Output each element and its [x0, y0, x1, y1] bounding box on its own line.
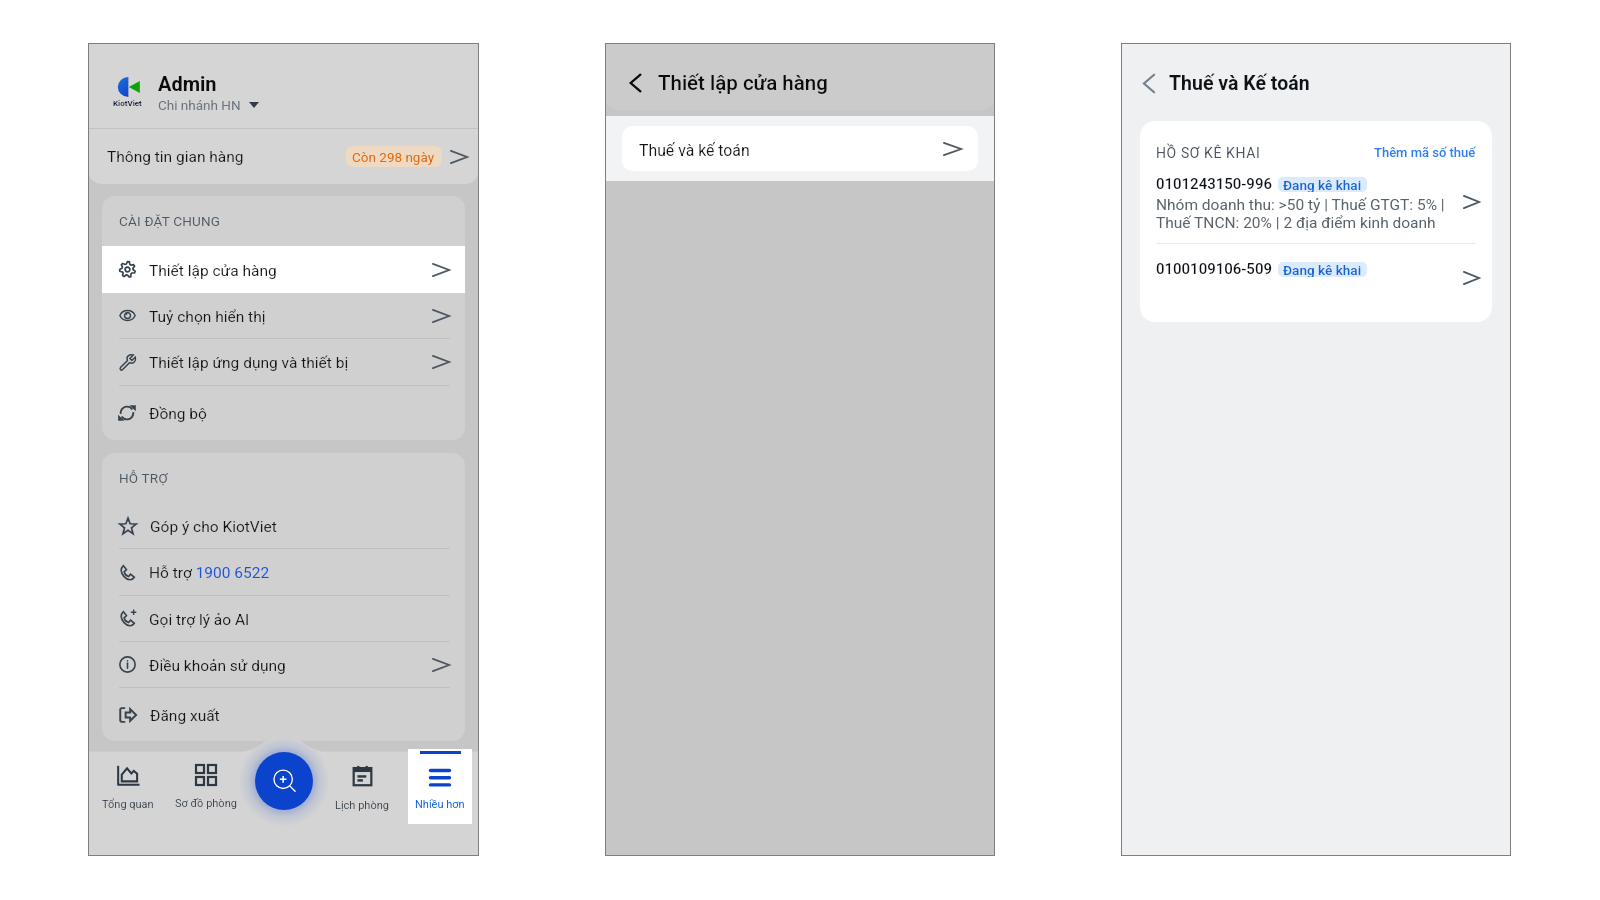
button[interactable]: Điều khoản sử dụng: [102, 642, 465, 688]
staticText: Thêm mã số thuế: [1374, 145, 1476, 160]
staticText: Thiết lập cửa hàng: [658, 71, 828, 95]
staticText: KiotViet: [113, 99, 142, 108]
staticText: HỖ TRỢ: [119, 470, 168, 486]
staticText: 0100109106-509: [1156, 260, 1272, 278]
staticText: Đồng bộ: [149, 405, 207, 423]
button[interactable]: 0101243150-996: [1140, 173, 1492, 243]
staticText: Tuỷ chọn hiển thị: [149, 308, 266, 326]
button[interactable]: 0100109106-509: [1140, 244, 1492, 322]
staticText: Thông tin gian hàng: [107, 148, 244, 166]
staticText: Tổng quan: [102, 798, 154, 811]
staticText: Nhóm doanh thu: >50 tỷ | Thuế GTGT: 5% |…: [1156, 196, 1445, 232]
button[interactable]: Gọi trợ lý ảo AI: [102, 596, 465, 642]
button[interactable]: Lịch phòng: [323, 749, 401, 856]
button[interactable]: Thêm mã số thuế: [1374, 145, 1476, 160]
button[interactable]: Góp ý cho KiotViet: [102, 503, 465, 549]
staticText: Đang kê khai: [1283, 177, 1362, 192]
button[interactable]: Đồng bộ: [102, 386, 465, 440]
staticText: HỒ SƠ KÊ KHAI: [1156, 145, 1261, 161]
staticText: Admin: [158, 72, 217, 95]
button[interactable]: Thiết lập ứng dụng và thiết bị: [102, 339, 465, 386]
button[interactable]: Nhiều hơn: [408, 749, 472, 824]
button[interactable]: Tuỷ chọn hiển thị: [102, 293, 465, 339]
staticText: Còn 298 ngày: [352, 149, 435, 165]
button[interactable]: Tìm kiếm: [255, 752, 313, 810]
staticText: Thuế và Kế toán: [1169, 72, 1310, 95]
button[interactable]: Quay lại: [622, 69, 650, 97]
staticText: Gọi trợ lý ảo AI: [149, 611, 250, 629]
staticText: Nhiều hơn: [415, 798, 465, 811]
button[interactable]: Đăng xuất: [102, 688, 465, 741]
staticText: Góp ý cho KiotViet: [150, 518, 277, 536]
staticText: Điều khoản sử dụng: [149, 657, 286, 675]
staticText: Chi nhánh HN: [158, 97, 241, 113]
button[interactable]: Sơ đồ phòng: [167, 749, 245, 856]
staticText: Thuế và kế toán: [639, 141, 750, 160]
button[interactable]: Thông tin gian hàng: [88, 129, 479, 184]
button[interactable]: Hỗ trợ 1900 6522: [102, 549, 465, 596]
staticText: CÀI ĐẶT CHUNG: [119, 213, 221, 229]
staticText: Đang kê khai: [1283, 262, 1362, 277]
staticText: Thiết lập cửa hàng: [149, 262, 277, 280]
staticText: 0101243150-996: [1156, 175, 1272, 193]
button[interactable]: Thiết lập cửa hàng: [102, 246, 465, 293]
button[interactable]: Quay lại: [1135, 69, 1163, 97]
staticText: Lịch phòng: [335, 799, 389, 812]
staticText: Đăng xuất: [150, 707, 220, 725]
staticText: Thiết lập ứng dụng và thiết bị: [149, 354, 349, 372]
staticText: Hỗ trợ 1900 6522: [149, 564, 270, 582]
button[interactable]: Thuế và kế toán: [622, 126, 978, 171]
button[interactable]: Tổng quan: [88, 749, 167, 856]
staticText: Sơ đồ phòng: [175, 797, 237, 810]
